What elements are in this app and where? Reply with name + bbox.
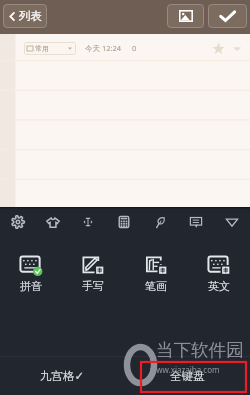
button[interactable]: Move cursor bbox=[70, 210, 106, 233]
button[interactable]: Hide keyboard bbox=[214, 210, 250, 233]
button[interactable]: 笔画 bbox=[124, 255, 187, 301]
button[interactable]: 九宫格✓ bbox=[0, 357, 125, 395]
button[interactable]: Save note bbox=[208, 4, 247, 28]
button[interactable]: 列表 bbox=[3, 4, 47, 28]
button[interactable]: 拼音 bbox=[0, 255, 62, 301]
staticText: 拼音 bbox=[20, 279, 42, 293]
staticText: 九宫格✓ bbox=[40, 369, 85, 383]
button[interactable]: 手写 bbox=[62, 255, 124, 301]
staticText: 0 bbox=[132, 43, 137, 53]
button[interactable]: Theme bbox=[35, 210, 70, 233]
staticText: 今天 12:24 bbox=[85, 43, 122, 53]
button[interactable]: Favourite bbox=[210, 40, 226, 56]
staticText: 手写 bbox=[82, 279, 104, 293]
button[interactable]: 常用 bbox=[24, 42, 76, 55]
staticText: 全键盘 bbox=[170, 369, 205, 383]
staticText: 列表 bbox=[19, 9, 42, 23]
staticText: 当下软件园 bbox=[156, 339, 244, 361]
button[interactable]: Number pad bbox=[106, 210, 142, 233]
button[interactable]: 全键盘 bbox=[125, 357, 250, 395]
staticText: 笔画 bbox=[145, 279, 167, 293]
button[interactable]: Handwriting brush bbox=[142, 210, 178, 233]
button[interactable]: Quick phrases bbox=[178, 210, 214, 233]
button[interactable]: Settings bbox=[0, 210, 35, 233]
button[interactable]: More options bbox=[230, 42, 243, 55]
staticText: 常用 bbox=[35, 44, 49, 53]
button[interactable]: Insert image bbox=[167, 4, 204, 28]
button[interactable]: 英文 bbox=[187, 255, 250, 301]
staticText: www.xiazaiba.com bbox=[150, 364, 220, 375]
staticText: 英文 bbox=[208, 279, 230, 293]
